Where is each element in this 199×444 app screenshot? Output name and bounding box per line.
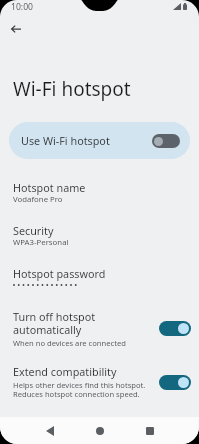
staticText: Turn off hotspot automatically	[13, 309, 96, 337]
staticText: Hotspot password	[13, 266, 106, 281]
button[interactable]: Extend compatibility	[0, 358, 199, 400]
staticText: Wi-Fi hotspot	[13, 76, 131, 102]
button[interactable]: Back	[33, 417, 66, 444]
button[interactable]: Security	[0, 218, 199, 250]
staticText: WPA3-Personal	[13, 237, 69, 248]
staticText: Use Wi-Fi hotspot	[21, 133, 110, 148]
button[interactable]: Back	[3, 16, 29, 42]
staticText: Helps other devices find this hotspot. R…	[13, 380, 146, 399]
staticText: Security	[13, 223, 54, 238]
button[interactable]: Home	[83, 417, 116, 444]
button[interactable]: Hotspot password	[0, 261, 199, 295]
staticText: 10:00	[11, 1, 33, 13]
button[interactable]: Hotspot name	[0, 175, 199, 207]
staticText: When no devices are connected	[13, 338, 126, 348]
button[interactable]: Turn off hotspot automatically	[0, 303, 199, 345]
button[interactable]: Use Wi-Fi hotspot	[9, 122, 190, 159]
staticText: Vodafone Pro	[13, 194, 63, 205]
staticText: Extend compatibility	[13, 364, 117, 379]
staticText: Hotspot name	[13, 180, 86, 195]
button[interactable]: Recent apps	[133, 417, 166, 444]
